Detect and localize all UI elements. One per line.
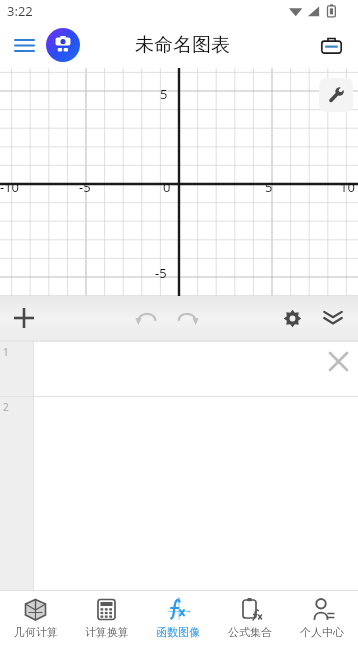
button[interactable]: Saved graphs <box>314 28 348 62</box>
staticText: -10 <box>0 178 20 196</box>
button[interactable]: Collapse <box>315 300 351 336</box>
button[interactable]: 函数图像 <box>142 591 214 645</box>
staticText: 几何计算 <box>14 625 58 639</box>
staticText: 公式集合 <box>228 625 272 639</box>
staticText: 1 <box>3 345 9 359</box>
staticText: 5 <box>265 178 273 196</box>
staticText: 函数图像 <box>156 625 200 639</box>
staticText: 0 <box>163 178 171 196</box>
button[interactable]: Camera capture <box>46 28 80 62</box>
button[interactable]: 几何计算 <box>0 591 71 645</box>
button[interactable]: Settings <box>274 300 310 336</box>
staticText: -5 <box>79 178 91 196</box>
button[interactable]: Menu <box>8 29 40 61</box>
button[interactable]: 2 <box>0 397 358 441</box>
button[interactable]: Add expression <box>6 300 42 336</box>
staticText: 2 <box>3 400 9 414</box>
staticText: -5 <box>155 264 167 282</box>
button[interactable]: Graph settings <box>319 78 353 112</box>
button[interactable]: 1 <box>0 342 358 396</box>
staticText: 10 <box>340 178 355 196</box>
button[interactable]: 计算换算 <box>71 591 142 645</box>
staticText: 计算换算 <box>85 625 129 639</box>
button[interactable]: 公式集合 <box>214 591 286 645</box>
button[interactable]: 个人中心 <box>286 591 358 645</box>
staticText: 3:22 <box>7 2 33 20</box>
button[interactable]: 未命名图表 <box>135 33 230 57</box>
button[interactable]: Undo <box>128 300 164 336</box>
staticText: 个人中心 <box>300 625 344 639</box>
button[interactable]: Redo <box>170 300 206 336</box>
staticText: 5 <box>160 85 168 103</box>
button[interactable]: Clear expression <box>323 346 353 376</box>
